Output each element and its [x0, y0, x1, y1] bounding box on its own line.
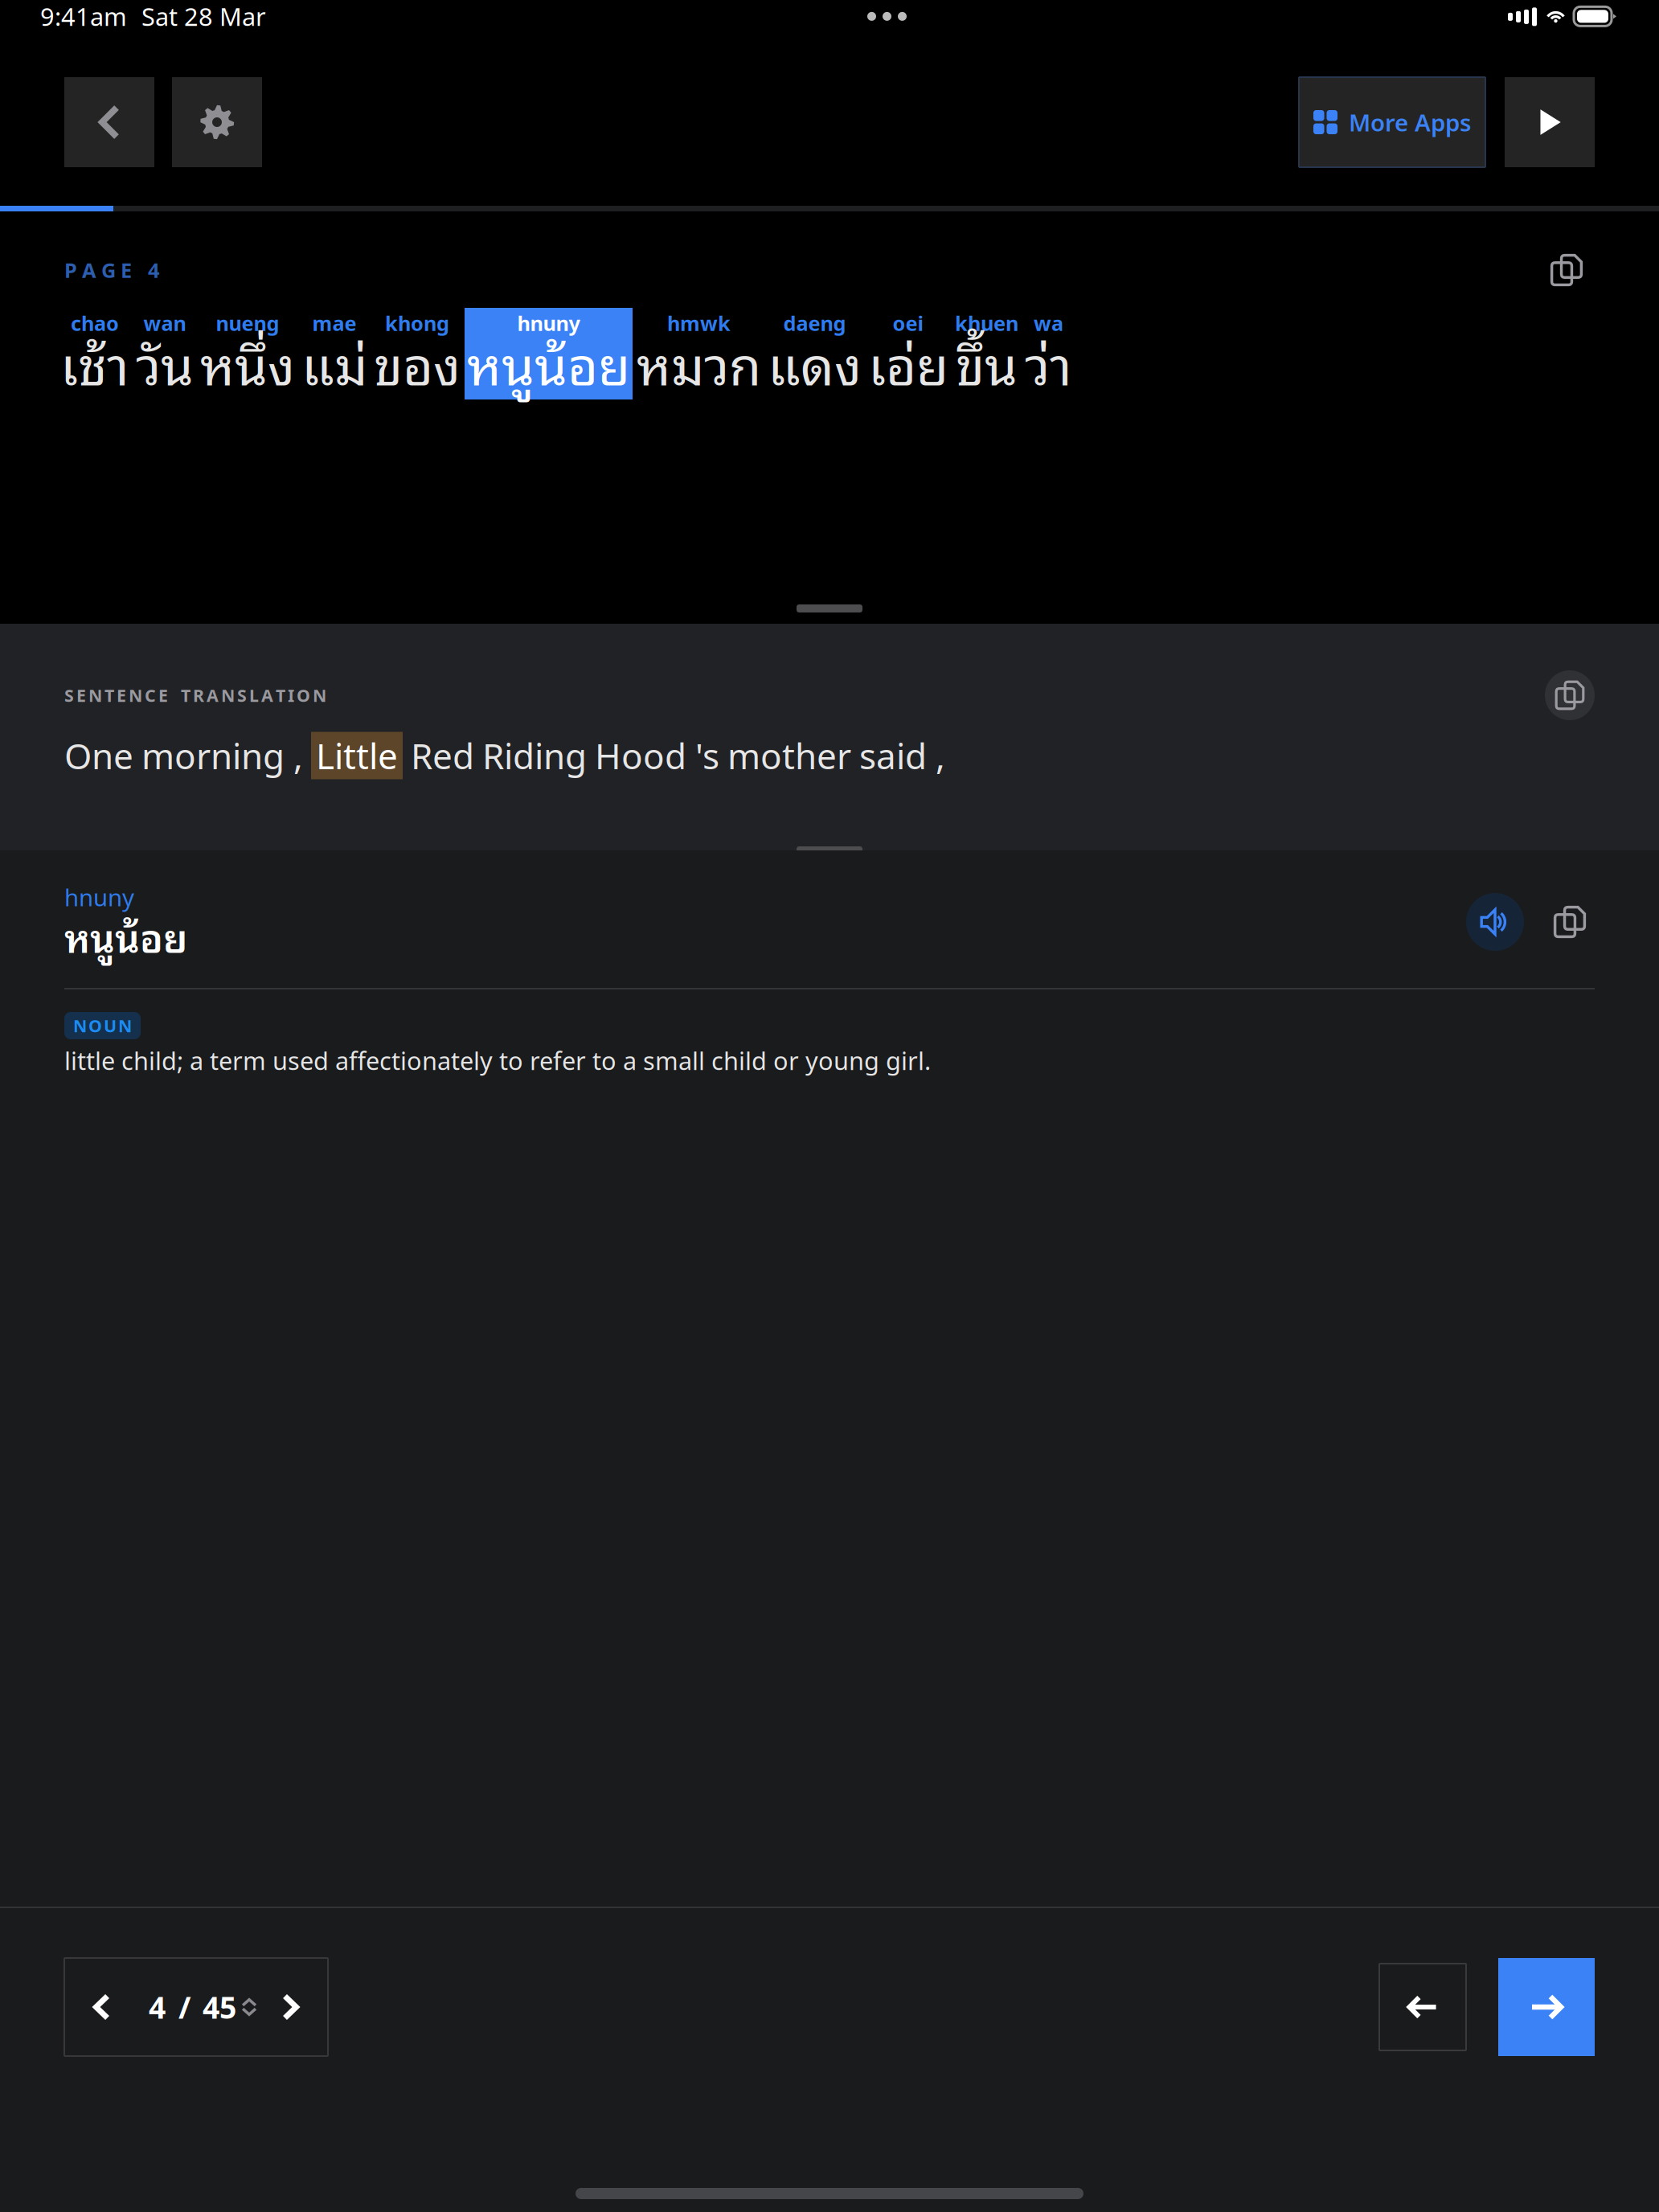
staticText: oei: [893, 310, 924, 337]
staticText: T: [181, 684, 190, 707]
staticText: R: [193, 684, 204, 707]
staticText: แดง: [768, 320, 862, 404]
staticText: A: [207, 684, 219, 707]
staticText: N: [73, 1014, 87, 1037]
staticText: 45: [203, 1987, 236, 2027]
staticText: Riding: [482, 732, 587, 779]
staticText: hnuny: [64, 881, 134, 913]
staticText: C: [145, 684, 156, 707]
staticText: mae: [312, 310, 356, 337]
button[interactable]: Back: [64, 77, 154, 167]
staticText: T: [104, 684, 114, 707]
staticText: N: [88, 684, 102, 707]
staticText: E: [76, 684, 86, 707]
staticText: หมวก: [637, 320, 761, 404]
staticText: Sat 28 Mar: [141, 0, 266, 33]
button[interactable]: Copy word: [1545, 897, 1595, 947]
staticText: U: [104, 1014, 117, 1037]
staticText: More Apps: [1349, 107, 1471, 138]
staticText: khong: [385, 310, 449, 337]
staticText: chao: [71, 310, 119, 337]
staticText: เอ่ย: [868, 320, 948, 404]
staticText: morning ,: [141, 732, 303, 779]
staticText: I: [288, 684, 294, 707]
staticText: หนูน้อย: [64, 905, 187, 966]
staticText: N: [129, 684, 142, 707]
staticText: หนูน้อย: [467, 320, 630, 404]
staticText: ขึ้น: [956, 320, 1018, 404]
staticText: Little: [316, 732, 398, 779]
staticText: N: [313, 684, 326, 707]
staticText: hmwk: [667, 310, 731, 337]
button[interactable]: Copy translation: [1545, 670, 1595, 720]
staticText: One: [64, 732, 133, 779]
staticText: N: [221, 684, 235, 707]
staticText: hnuny: [517, 310, 580, 337]
staticText: daeng: [783, 310, 846, 337]
button[interactable]: More Apps: [1299, 77, 1485, 167]
staticText: nueng: [216, 310, 279, 337]
staticText: /: [178, 1987, 190, 2027]
staticText: said ,: [859, 732, 945, 779]
staticText: O: [88, 1014, 102, 1037]
staticText: Red: [411, 732, 474, 779]
staticText: 4: [149, 1987, 166, 2027]
staticText: เช้า: [60, 320, 129, 404]
staticText: ว่า: [1025, 320, 1072, 404]
staticText: wan: [143, 310, 186, 337]
staticText: G: [101, 257, 116, 284]
staticText: 4: [148, 257, 159, 284]
staticText: E: [117, 684, 126, 707]
staticText: E: [158, 684, 168, 707]
button[interactable]: Copy sentence: [1538, 242, 1595, 298]
staticText: 9:41am: [40, 0, 127, 33]
staticText: ของ: [374, 320, 461, 404]
staticText: หนึ่ง: [200, 320, 295, 404]
button[interactable]: Play pronunciation: [1466, 893, 1524, 951]
staticText: mother: [727, 732, 851, 779]
staticText: A: [82, 257, 96, 284]
staticText: แม่: [301, 320, 367, 404]
staticText: O: [297, 684, 310, 707]
staticText: wa: [1034, 310, 1063, 337]
button[interactable]: Play: [1505, 77, 1595, 167]
button[interactable]: Settings: [172, 77, 262, 167]
staticText: S: [64, 684, 74, 707]
staticText: A: [261, 684, 273, 707]
staticText: N: [118, 1014, 132, 1037]
staticText: E: [121, 257, 132, 284]
staticText: khuen: [955, 310, 1018, 337]
staticText: T: [276, 684, 285, 707]
staticText: S: [237, 684, 247, 707]
staticText: P: [64, 257, 77, 284]
staticText: little child; a term used affectionately…: [64, 1044, 931, 1077]
button[interactable]: 4: [64, 1958, 328, 2056]
staticText: วัน: [136, 320, 194, 404]
staticText: L: [249, 684, 259, 707]
staticText: Hood 's: [595, 732, 719, 779]
button[interactable]: Previous: [1379, 1964, 1466, 2050]
button[interactable]: Next: [1498, 1958, 1595, 2056]
